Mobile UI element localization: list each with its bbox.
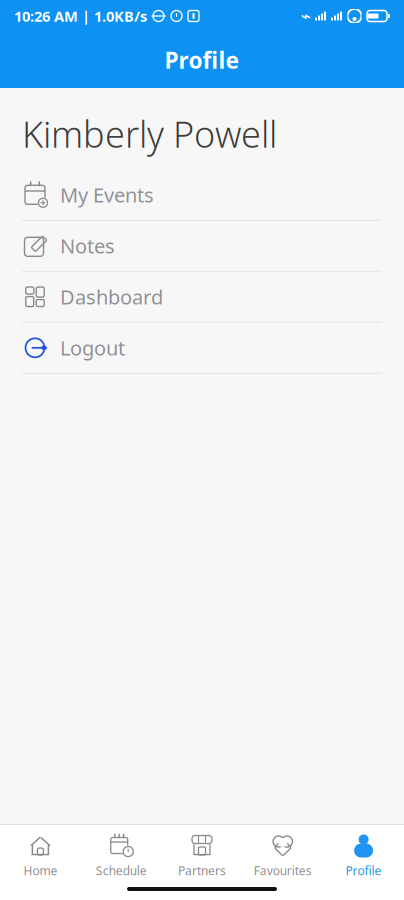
staticText: Profile: [164, 45, 239, 75]
button[interactable]: Partners: [162, 831, 242, 881]
button[interactable]: Notes: [0, 221, 404, 272]
staticText: My Events: [60, 181, 154, 208]
staticText: Partners: [178, 862, 226, 878]
button[interactable]: Dashboard: [0, 272, 404, 323]
staticText: ⌁: [300, 6, 310, 26]
staticText: Home: [23, 862, 57, 878]
staticText: Profile: [346, 862, 382, 878]
staticText: Schedule: [96, 862, 147, 878]
staticText: Notes: [60, 232, 115, 259]
staticText: Dashboard: [60, 283, 163, 310]
staticText: Favourites: [254, 862, 312, 878]
button[interactable]: Home: [0, 831, 81, 881]
button[interactable]: Profile: [323, 831, 404, 881]
staticText: Logout: [60, 334, 125, 361]
button[interactable]: Favourites: [242, 831, 323, 881]
staticText: Kimberly Powell: [22, 110, 277, 158]
staticText: 10:26 AM | 1.0KB/s: [14, 6, 147, 26]
button[interactable]: Schedule: [81, 831, 162, 881]
button[interactable]: My Events: [0, 170, 404, 221]
button[interactable]: Logout: [0, 323, 404, 374]
